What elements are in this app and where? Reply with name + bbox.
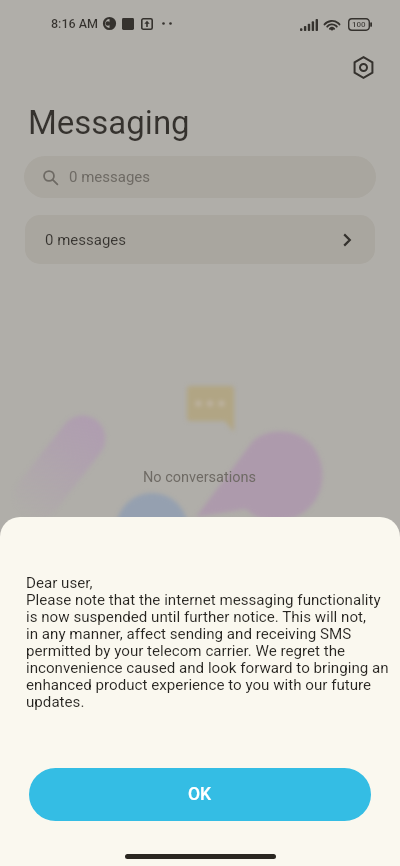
staticText: Messaging xyxy=(28,103,190,142)
button[interactable]: OK xyxy=(29,768,371,821)
staticText: OK xyxy=(188,784,212,805)
button[interactable]: 0 messages xyxy=(25,215,375,264)
staticText: 0 messages xyxy=(69,168,151,186)
staticText: Dear user, Please note that the internet… xyxy=(26,574,389,710)
button[interactable]: Settings xyxy=(346,50,380,84)
staticText: 0 messages xyxy=(45,231,127,249)
button[interactable]: 0 messages xyxy=(24,156,376,198)
staticText: 8:16 AM xyxy=(51,16,98,31)
staticText: 100 xyxy=(352,20,366,29)
staticText: No conversations xyxy=(143,469,257,486)
